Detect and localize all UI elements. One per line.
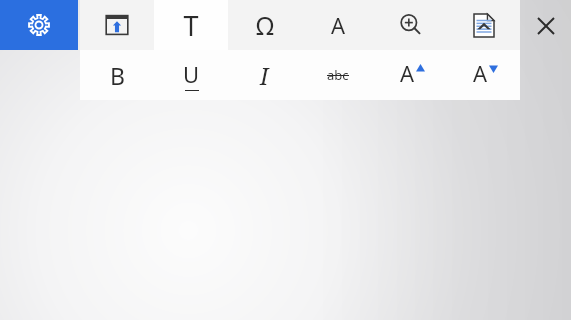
button[interactable]: Settings: [0, 0, 78, 50]
staticText: A: [473, 58, 488, 88]
button[interactable]: Insert object: [80, 0, 154, 50]
button[interactable]: Increase font size: [374, 50, 447, 100]
button[interactable]: Document: [447, 0, 520, 50]
button[interactable]: Underline: [154, 50, 228, 100]
button[interactable]: Text: [154, 0, 228, 50]
button[interactable]: Decrease font size: [447, 50, 520, 100]
button[interactable]: Italic: [228, 50, 301, 100]
staticText: abc: [327, 66, 349, 84]
staticText: U: [183, 59, 200, 89]
staticText: A: [400, 58, 415, 88]
button[interactable]: Text color: [301, 0, 374, 50]
staticText: Ω: [256, 8, 274, 42]
staticText: A: [331, 10, 346, 40]
staticText: B: [110, 60, 125, 91]
button[interactable]: Bold: [80, 50, 154, 100]
button[interactable]: Symbol: [228, 0, 301, 50]
button[interactable]: Strikethrough: [301, 50, 374, 100]
staticText: I: [260, 60, 269, 91]
button[interactable]: Zoom in: [374, 0, 447, 50]
button[interactable]: Close: [522, 2, 570, 50]
staticText: T: [183, 7, 199, 44]
